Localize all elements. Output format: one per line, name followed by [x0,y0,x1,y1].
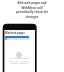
button[interactable] [5,38,30,40]
button[interactable]: Watched pages [5,31,25,35]
staticText: WebMoon will [0,6,64,10]
staticText: periodically check for [0,10,64,14]
other: Empty state [16,52,22,58]
staticText: No watched pages yet. Tap + to add a pag… [8,57,31,64]
staticText: Watched pages [5,31,25,35]
staticText: changes [0,15,64,19]
staticText: Add web pages and [0,1,64,5]
